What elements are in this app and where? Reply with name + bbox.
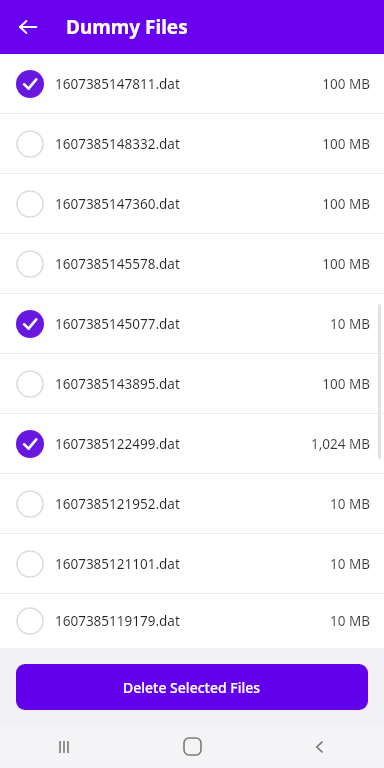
button[interactable]: 1607385145077.dat — [0, 294, 384, 353]
button[interactable]: 1607385145578.dat — [0, 234, 384, 293]
button[interactable]: 1607385147360.dat — [0, 174, 384, 233]
staticText: 1607385145578.dat — [55, 255, 322, 273]
button[interactable]: Back — [256, 725, 384, 768]
staticText: 1,024 MB — [310, 435, 370, 453]
staticText: 100 MB — [322, 375, 370, 393]
staticText: 1607385148332.dat — [55, 135, 322, 153]
staticText: 10 MB — [330, 612, 370, 630]
button[interactable]: 1607385121952.dat — [0, 474, 384, 533]
button[interactable]: 1607385122499.dat — [0, 414, 384, 473]
staticText: 1607385119179.dat — [55, 612, 330, 630]
staticText: 100 MB — [322, 75, 370, 93]
staticText: 1607385145077.dat — [55, 315, 330, 333]
button[interactable]: 1607385119179.dat — [0, 594, 384, 648]
staticText: 1607385147360.dat — [55, 195, 322, 213]
button[interactable]: Delete Selected Files — [16, 664, 368, 710]
staticText: 100 MB — [322, 195, 370, 213]
staticText: 10 MB — [330, 555, 370, 573]
staticText: 1607385121101.dat — [55, 555, 330, 573]
staticText: 100 MB — [322, 255, 370, 273]
button[interactable]: 1607385121101.dat — [0, 534, 384, 593]
staticText: 10 MB — [330, 495, 370, 513]
button[interactable]: 1607385147811.dat — [0, 54, 384, 113]
staticText: 1607385143895.dat — [55, 375, 322, 393]
staticText: 1607385147811.dat — [55, 75, 322, 93]
staticText: 100 MB — [322, 135, 370, 153]
button[interactable]: 1607385148332.dat — [0, 114, 384, 173]
staticText: 10 MB — [330, 315, 370, 333]
staticText: Delete Selected Files — [123, 678, 261, 697]
button[interactable]: Back — [10, 9, 46, 45]
button[interactable]: Home — [128, 725, 256, 768]
staticText: 1607385121952.dat — [55, 495, 330, 513]
button[interactable]: 1607385143895.dat — [0, 354, 384, 413]
button[interactable]: Recent apps — [0, 725, 128, 768]
staticText: 1607385122499.dat — [55, 435, 310, 453]
staticText: Dummy Files — [66, 14, 188, 40]
